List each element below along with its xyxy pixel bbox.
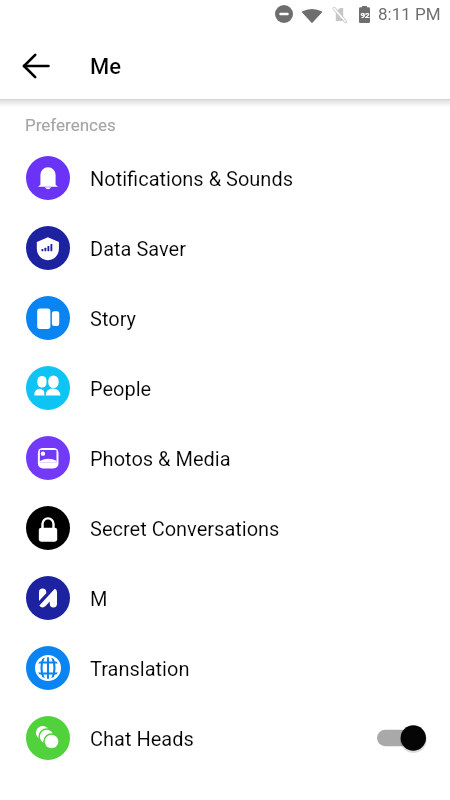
staticText: Photos & Media (90, 447, 231, 470)
button[interactable]: Data Saver (0, 213, 450, 283)
staticText: Translation (90, 657, 190, 680)
staticText: People (90, 377, 152, 400)
button[interactable]: Photos & Media (0, 423, 450, 493)
staticText: Secret Conversations (90, 517, 280, 540)
staticText: 92 (360, 11, 370, 20)
button[interactable]: Notifications & Sounds (0, 143, 450, 213)
button[interactable]: M (0, 563, 450, 633)
staticText: Story (90, 307, 137, 330)
button[interactable]: People (0, 353, 450, 423)
button[interactable]: Translation (0, 633, 450, 703)
staticText: M (90, 587, 108, 610)
button[interactable]: Story (0, 283, 450, 353)
button[interactable]: Back (14, 44, 58, 88)
staticText: 8:11 PM (378, 4, 441, 24)
staticText: Chat Heads (90, 727, 194, 750)
button[interactable]: Chat Heads (0, 703, 450, 773)
staticText: Preferences (25, 115, 116, 135)
button[interactable]: Secret Conversations (0, 493, 450, 563)
staticText: Data Saver (90, 237, 186, 260)
staticText: Me (90, 54, 122, 80)
staticText: Notifications & Sounds (90, 167, 294, 190)
button[interactable]: Chat Heads toggle (377, 723, 426, 753)
